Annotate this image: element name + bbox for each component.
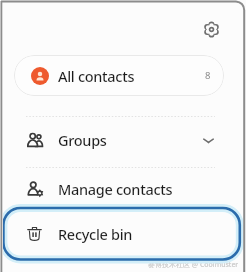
button[interactable]: Settings xyxy=(198,16,225,43)
button[interactable]: All contacts xyxy=(14,55,224,96)
button[interactable]: Manage contacts xyxy=(3,169,243,209)
staticText: Groups xyxy=(58,130,107,150)
staticText: 8 xyxy=(205,69,211,82)
staticText: Manage contacts xyxy=(58,179,173,199)
staticText: All contacts xyxy=(58,66,135,86)
staticText: 赛博技术社区 @ Coolmuster xyxy=(148,260,239,270)
button[interactable]: Groups xyxy=(3,119,243,161)
button[interactable]: Recycle bin xyxy=(3,204,240,264)
staticText: Recycle bin xyxy=(58,224,133,244)
